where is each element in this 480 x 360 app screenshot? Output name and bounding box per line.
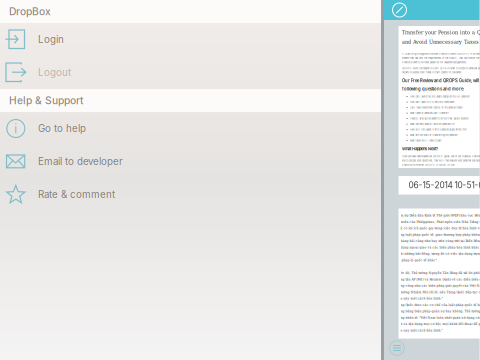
button[interactable]: Logout <box>0 56 382 89</box>
staticText: u này một cách hòa bình." <box>400 296 442 300</box>
staticText: 06-15-2014 10-51-07 <box>408 180 480 190</box>
staticText: ng cũng như các biện pháp giải quyết của… <box>400 284 480 288</box>
staticText: How can I avoid the 55% death charge on … <box>410 95 470 98</box>
staticText: Transfer your Pension into a QROPS <box>402 29 480 36</box>
staticText: and Avoid Unnecessary Taxes <box>402 39 479 45</box>
staticText: How will the Labour Party's pension plan… <box>410 128 467 131</box>
staticText: Can I take investment control of my pens… <box>410 106 463 109</box>
staticText: Should I give up the benefits on my fina… <box>410 117 469 120</box>
staticText: Go to help <box>38 123 86 134</box>
button[interactable]: Rate & comment <box>0 178 382 211</box>
staticText: Login <box>38 34 64 45</box>
staticText: Help & Support <box>9 94 83 107</box>
button[interactable]: Menu <box>385 336 409 360</box>
staticText: Email to developer <box>38 156 123 167</box>
staticText: Our Free Review and QROPS Guide, will an… <box>402 78 480 83</box>
staticText: ỷ có lợi ích quốc gia trong việc duy trì… <box>400 226 480 230</box>
staticText: tướng Nhiệm MG chỉ rõ: nếu Trung Quốc ti… <box>400 290 480 294</box>
staticText: Pension Benefits without penalties for u… <box>402 61 467 64</box>
staticText: What taxes will I have to pay? <box>410 139 442 142</box>
staticText: m dự Diễn đàn Kinh tế Thế giới (WEF) khu… <box>400 213 480 217</box>
staticText: following questions and more: <box>402 86 464 91</box>
staticText: ư bảo đảm độc lập, tự chủ, chủ quyền, to… <box>400 347 480 351</box>
staticText: Rate & comment <box>38 189 115 200</box>
staticText: What Happens Next? <box>402 146 438 151</box>
staticText: A Qualifying Recognised Overseas Pension… <box>402 52 480 55</box>
staticText: ng tấn AP (Mỹ) và Reuters (Anh) về các d… <box>400 277 480 281</box>
staticText: ng nhấn rõ: "Việt Nam luôn nhất quán sử … <box>400 316 480 319</box>
staticText: QROPS were introduced in April 2006 in o… <box>402 67 480 70</box>
staticText: DropBox <box>9 5 51 18</box>
staticText: What types of pensions can I transfer? <box>410 112 449 115</box>
staticText: Logout <box>38 67 71 78</box>
staticText: ng Quốc theo các cơ chế của luật pháp qu… <box>400 303 480 307</box>
staticText: you to discuss your objectives, they wil… <box>402 159 480 162</box>
staticText: ng luật pháp quốc tế, giao thương hợp ph… <box>400 233 480 236</box>
button[interactable]: Login <box>0 23 382 56</box>
staticText: scheme that has met the requirements of … <box>402 57 480 60</box>
staticText: miền của Philippines, Phát ngôn viên Nhà… <box>400 220 480 224</box>
staticText: b và tận dụng mọi cơ hội, mọi kênh đối t… <box>400 322 480 326</box>
staticText: What are the costs of transferring my pe… <box>410 134 458 137</box>
button[interactable]: Email to developer <box>0 145 382 178</box>
button[interactable]: Go to help <box>0 112 382 145</box>
staticText: dụng ngoại giao và các biện pháp hòa bìn… <box>400 245 480 249</box>
staticText: Chúng tôi luôn mong muốn có hòa bình, hữ… <box>400 341 479 345</box>
staticText: hàng hải cũng như bay trên vùng trời tại… <box>400 239 480 243</box>
staticText: ng bằng biện pháp quân sự hay không. Thủ… <box>400 309 480 313</box>
staticText: a decision on whether QROPS is correct f… <box>402 163 455 166</box>
staticText: pháp lý quốc tế khác". <box>400 258 437 262</box>
staticText: What currency should I hold my pensions … <box>410 123 455 126</box>
staticText: How can I pass 100% onto my loved ones? <box>410 101 455 103</box>
button[interactable]: Compose <box>383 0 411 20</box>
staticText: ớc đó, Thủ tướng Nguyễn Tấn Dũng đã trả … <box>400 271 480 275</box>
staticText: ải những bất đồng, trong đó có việc tận … <box>400 252 480 256</box>
staticText: u nay một cách hòa bình." <box>400 328 442 332</box>
staticText: holders to access their funds in their c… <box>402 71 462 74</box>
staticText: Once you have downloaded our QROPS guide… <box>402 155 480 158</box>
